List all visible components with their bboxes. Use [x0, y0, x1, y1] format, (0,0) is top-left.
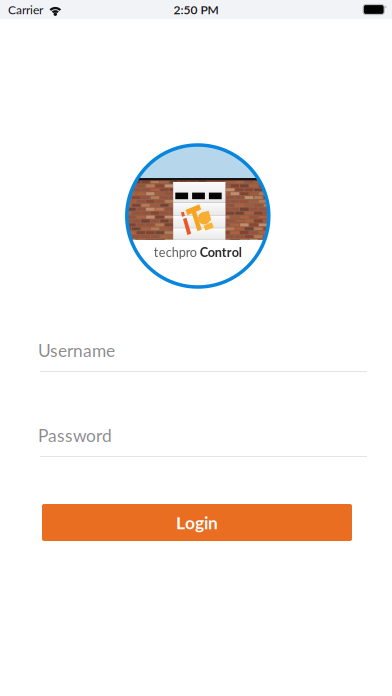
staticText: 2:50 PM — [173, 2, 218, 17]
button[interactable]: Login — [42, 504, 352, 541]
staticText: Control — [200, 244, 242, 260]
staticText: Username — [38, 340, 115, 361]
staticText: techpro — [154, 244, 197, 260]
staticText: Carrier — [8, 2, 43, 17]
button[interactable]: Username — [40, 341, 367, 372]
staticText: Login — [176, 512, 218, 533]
button[interactable]: Password — [40, 426, 367, 457]
staticText: Password — [38, 425, 112, 446]
